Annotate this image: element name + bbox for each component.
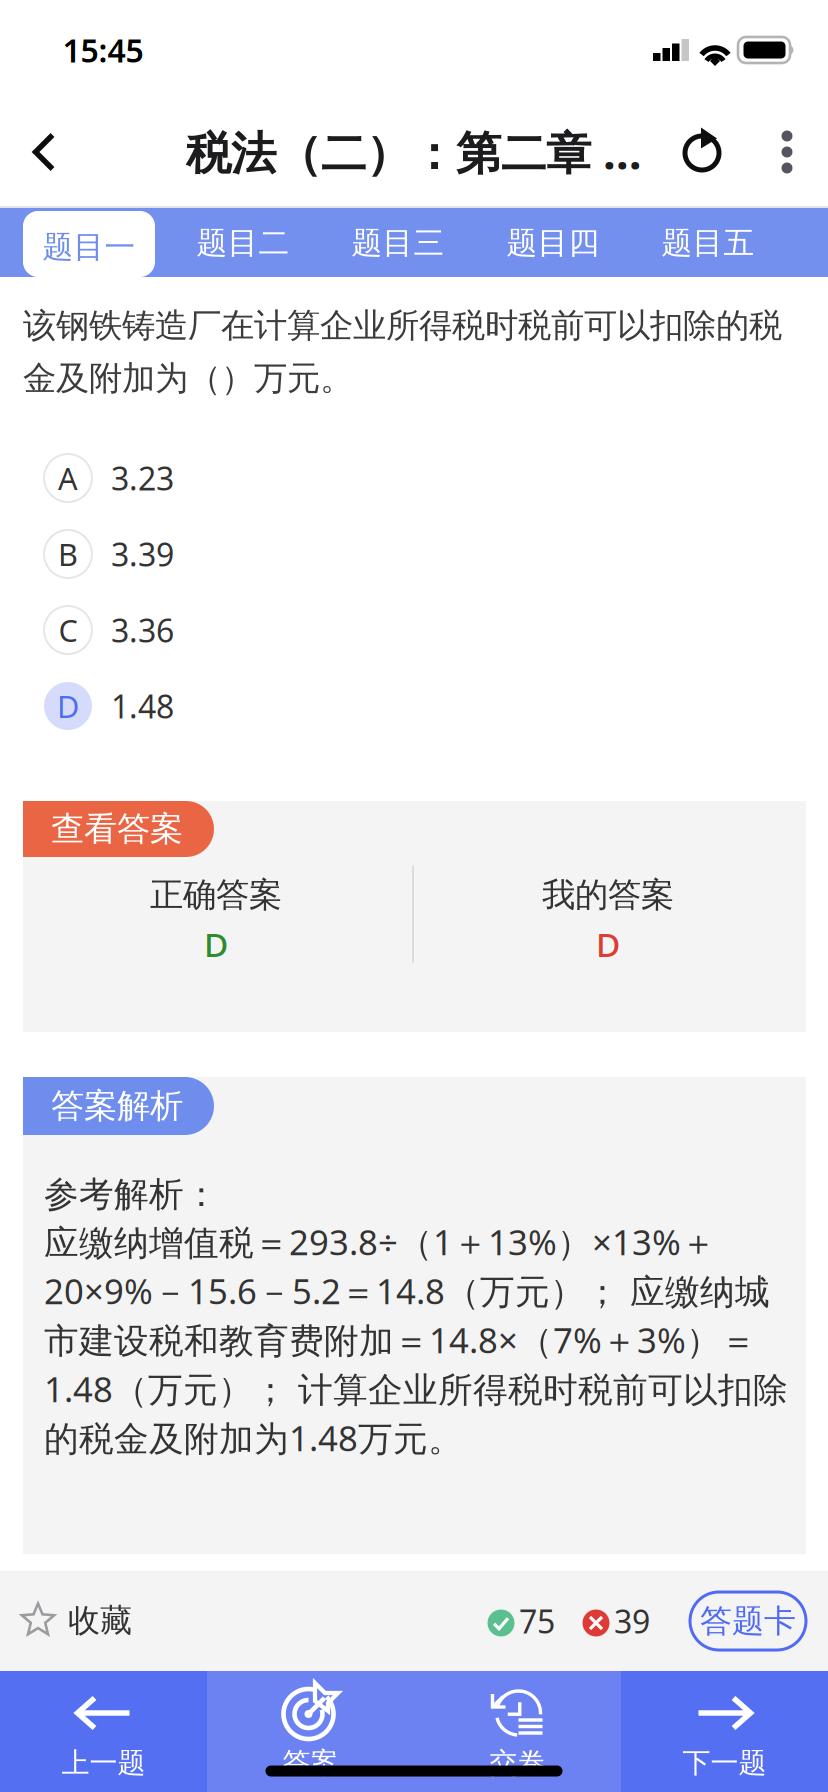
staticText: 题目五 — [661, 224, 754, 262]
button[interactable]: 题目三 — [323, 208, 473, 277]
staticText: 交卷 — [489, 1746, 545, 1780]
staticText: A — [58, 458, 78, 498]
button[interactable]: 交卷 — [414, 1671, 621, 1792]
staticText: C — [58, 610, 77, 650]
button[interactable]: Back — [0, 106, 90, 198]
button[interactable]: More options — [749, 109, 825, 195]
staticText: 正确答案 — [150, 874, 282, 915]
staticText: 题目一 — [42, 228, 135, 266]
staticText: 3.39 — [111, 533, 174, 575]
staticText: 答案 — [282, 1746, 338, 1780]
staticText: 收藏 — [68, 1601, 132, 1640]
staticText: 题目二 — [196, 224, 289, 262]
staticText: 1.48 — [111, 685, 174, 727]
button[interactable]: 下一题 — [621, 1671, 828, 1792]
button[interactable]: 题目一 — [23, 211, 155, 277]
button[interactable]: 收藏 — [22, 1570, 162, 1671]
staticText: B — [58, 534, 78, 574]
button[interactable]: 上一题 — [0, 1671, 207, 1792]
staticText: 题目四 — [506, 224, 599, 262]
staticText: 15:45 — [62, 29, 143, 71]
button[interactable]: 答题卡 — [688, 1590, 808, 1652]
button[interactable]: 题目五 — [633, 208, 783, 277]
button[interactable]: B — [23, 517, 805, 591]
button[interactable]: Refresh — [660, 109, 746, 195]
button[interactable]: 题目四 — [478, 208, 628, 277]
staticText: D — [57, 686, 79, 726]
staticText: 上一题 — [61, 1746, 145, 1780]
staticText: 该钢铁铸造厂在计算企业所得税时税前可以扣除的税金及附加为（）万元。 — [23, 305, 782, 399]
staticText: 答题卡 — [700, 1601, 796, 1641]
button[interactable]: 答案 — [207, 1671, 414, 1792]
button[interactable]: A — [23, 441, 805, 515]
button[interactable]: D — [23, 669, 805, 743]
staticText: 我的答案 — [542, 874, 674, 915]
staticText: 3.23 — [111, 457, 174, 499]
staticText: 下一题 — [682, 1746, 766, 1780]
button[interactable]: 题目二 — [168, 208, 318, 277]
button[interactable]: C — [23, 593, 805, 667]
staticText: D — [596, 922, 620, 966]
staticText: 题目三 — [351, 224, 444, 262]
staticText: 3.36 — [111, 609, 174, 651]
staticText: D — [204, 922, 228, 966]
staticText: 参考解析： 应缴纳增值税＝293.8÷（1＋13%）×13%＋20×9%－15.… — [44, 1173, 788, 1461]
staticText: 75 — [519, 1600, 555, 1642]
staticText: 查看答案 — [51, 808, 183, 849]
staticText: 39 — [614, 1600, 650, 1642]
staticText: 答案解析 — [51, 1085, 183, 1126]
staticText: 税法（二）：第二章 … — [186, 122, 642, 182]
